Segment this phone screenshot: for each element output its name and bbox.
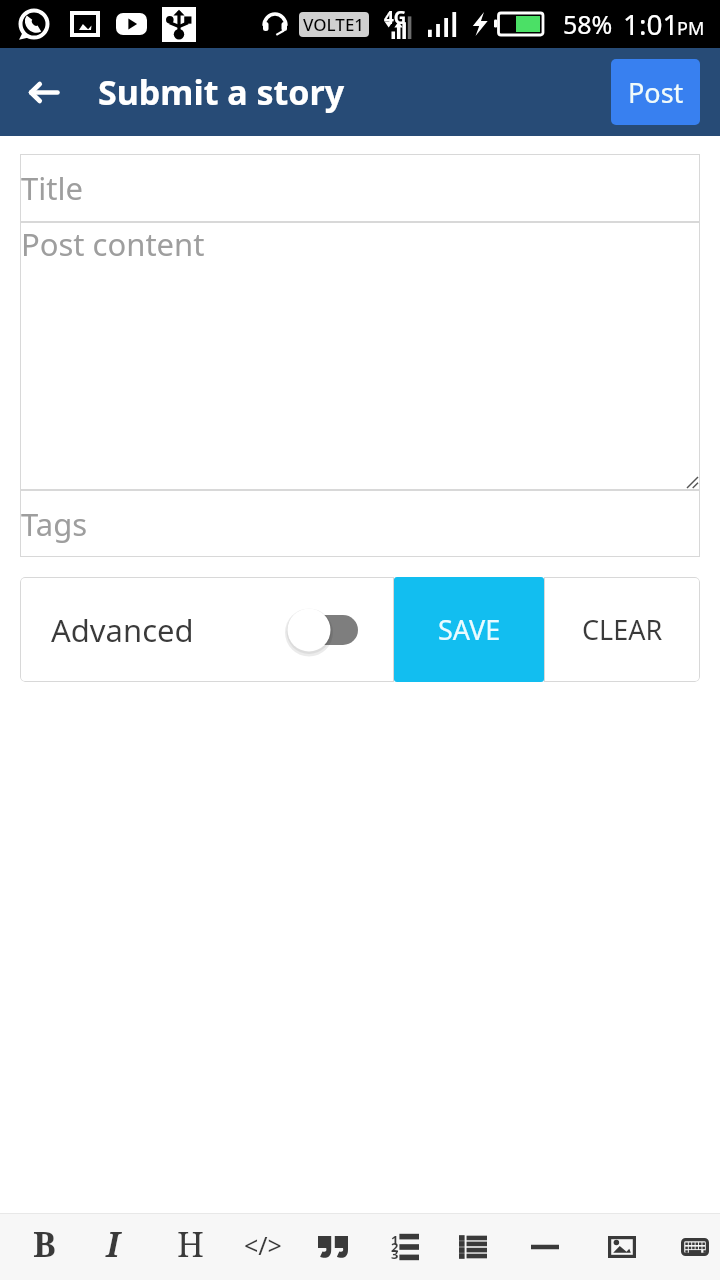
button[interactable]: Bulleted list xyxy=(439,1214,507,1280)
button[interactable]: Post content xyxy=(20,222,700,490)
staticText: 2 xyxy=(391,1238,399,1256)
staticText: H xyxy=(177,1221,204,1267)
staticText: Advanced xyxy=(51,609,194,651)
staticText: B xyxy=(33,1221,56,1267)
staticText: </> xyxy=(244,1228,282,1262)
button[interactable]: CLEAR xyxy=(544,577,700,682)
button[interactable]: Quote xyxy=(299,1214,367,1280)
button[interactable]: Italic xyxy=(79,1214,147,1280)
button[interactable]: Keyboard xyxy=(661,1214,720,1280)
button[interactable]: Code xyxy=(229,1214,297,1280)
staticText: SAVE xyxy=(438,611,501,648)
button[interactable]: Post xyxy=(611,59,700,125)
staticText: 4G xyxy=(384,6,407,29)
staticText: Title xyxy=(21,167,83,209)
button[interactable]: Back xyxy=(15,64,71,120)
staticText: Post xyxy=(628,74,684,111)
button[interactable]: Insert image xyxy=(588,1214,656,1280)
staticText: Post content xyxy=(21,223,205,265)
staticText: PM xyxy=(677,16,705,41)
staticText: 1:01 xyxy=(623,5,679,43)
staticText: Submit a story xyxy=(98,69,345,115)
staticText: CLEAR xyxy=(582,611,663,648)
staticText: 1 xyxy=(391,1231,399,1249)
staticText: I xyxy=(106,1221,120,1267)
button[interactable]: Heading xyxy=(156,1214,224,1280)
staticText: 58% xyxy=(563,7,613,41)
button[interactable]: Horizontal rule xyxy=(511,1214,579,1280)
button[interactable]: Title xyxy=(20,154,700,222)
button[interactable]: SAVE xyxy=(394,577,544,682)
button[interactable]: Numbered list xyxy=(371,1214,439,1280)
staticText: VOLTE1 xyxy=(303,13,365,36)
button[interactable]: Advanced xyxy=(20,577,394,682)
staticText: Tags xyxy=(21,503,88,545)
staticText: 3 xyxy=(391,1245,399,1263)
button[interactable]: Tags xyxy=(20,490,700,557)
button[interactable]: Bold xyxy=(10,1214,78,1280)
